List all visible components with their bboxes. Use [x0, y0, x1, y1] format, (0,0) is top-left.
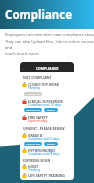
- staticText: UPLOAD FILE: [26, 109, 41, 112]
- staticText: NOT COMPLIANT: [23, 75, 52, 80]
- staticText: HOIST: [28, 164, 39, 168]
- button[interactable]: HOIST: [22, 164, 72, 172]
- staticText: COMPLIANCE: [36, 66, 59, 71]
- button[interactable]: UPLOAD FILE: [24, 108, 42, 112]
- staticText: URGENT - PLEASE RENEW: [23, 126, 65, 131]
- staticText: FIRE SAFETY: [28, 115, 48, 119]
- button[interactable]: FIRE SAFETY: [22, 115, 72, 123]
- staticText: CLOSED TOP WORK: [28, 82, 59, 86]
- staticText: Compliant until 10 days: [28, 103, 62, 107]
- staticText: Tracking: [28, 168, 40, 172]
- staticText: RENEW: [47, 109, 55, 112]
- button[interactable]: Compliance: [0, 0, 94, 29]
- staticText: GRADE B: [28, 133, 43, 137]
- button[interactable]: ELBICAL SUPERVISOR: [22, 99, 72, 107]
- staticText: LIFE SAFETY TRAINING: [28, 173, 65, 177]
- staticText: Expired today: [28, 119, 48, 123]
- staticText: Pending: [28, 86, 40, 90]
- staticText: RENEW: [47, 143, 55, 146]
- staticText: UPLOAD FILE: [26, 93, 41, 96]
- staticText: Compliant until 5 days: [28, 137, 60, 141]
- staticText: HYPHEN/WORKS: [28, 148, 55, 152]
- staticText: Compliance: [5, 7, 73, 23]
- button[interactable]: RENEW: [44, 108, 58, 112]
- staticText: UPLOAD FILE: [26, 143, 41, 146]
- button[interactable]: HYPHEN/WORKS: [22, 148, 72, 156]
- button[interactable]: RENEW: [44, 142, 58, 146]
- button[interactable]: CLOSED TOP WORK: [22, 82, 72, 90]
- button[interactable]: LIFE SAFETY TRAINING: [22, 173, 72, 180]
- staticText: ELBICAL SUPERVISOR: [28, 99, 63, 103]
- staticText: EXPIRING SOON: [23, 158, 51, 163]
- staticText: Compliant until 8 days: [28, 152, 60, 156]
- button[interactable]: GRADE B: [22, 133, 72, 141]
- button[interactable]: UPLOAD FILE: [24, 92, 42, 96]
- button[interactable]: UPLOAD FILE: [24, 142, 42, 146]
- staticText: Employees can view their own compliance …: [5, 32, 94, 56]
